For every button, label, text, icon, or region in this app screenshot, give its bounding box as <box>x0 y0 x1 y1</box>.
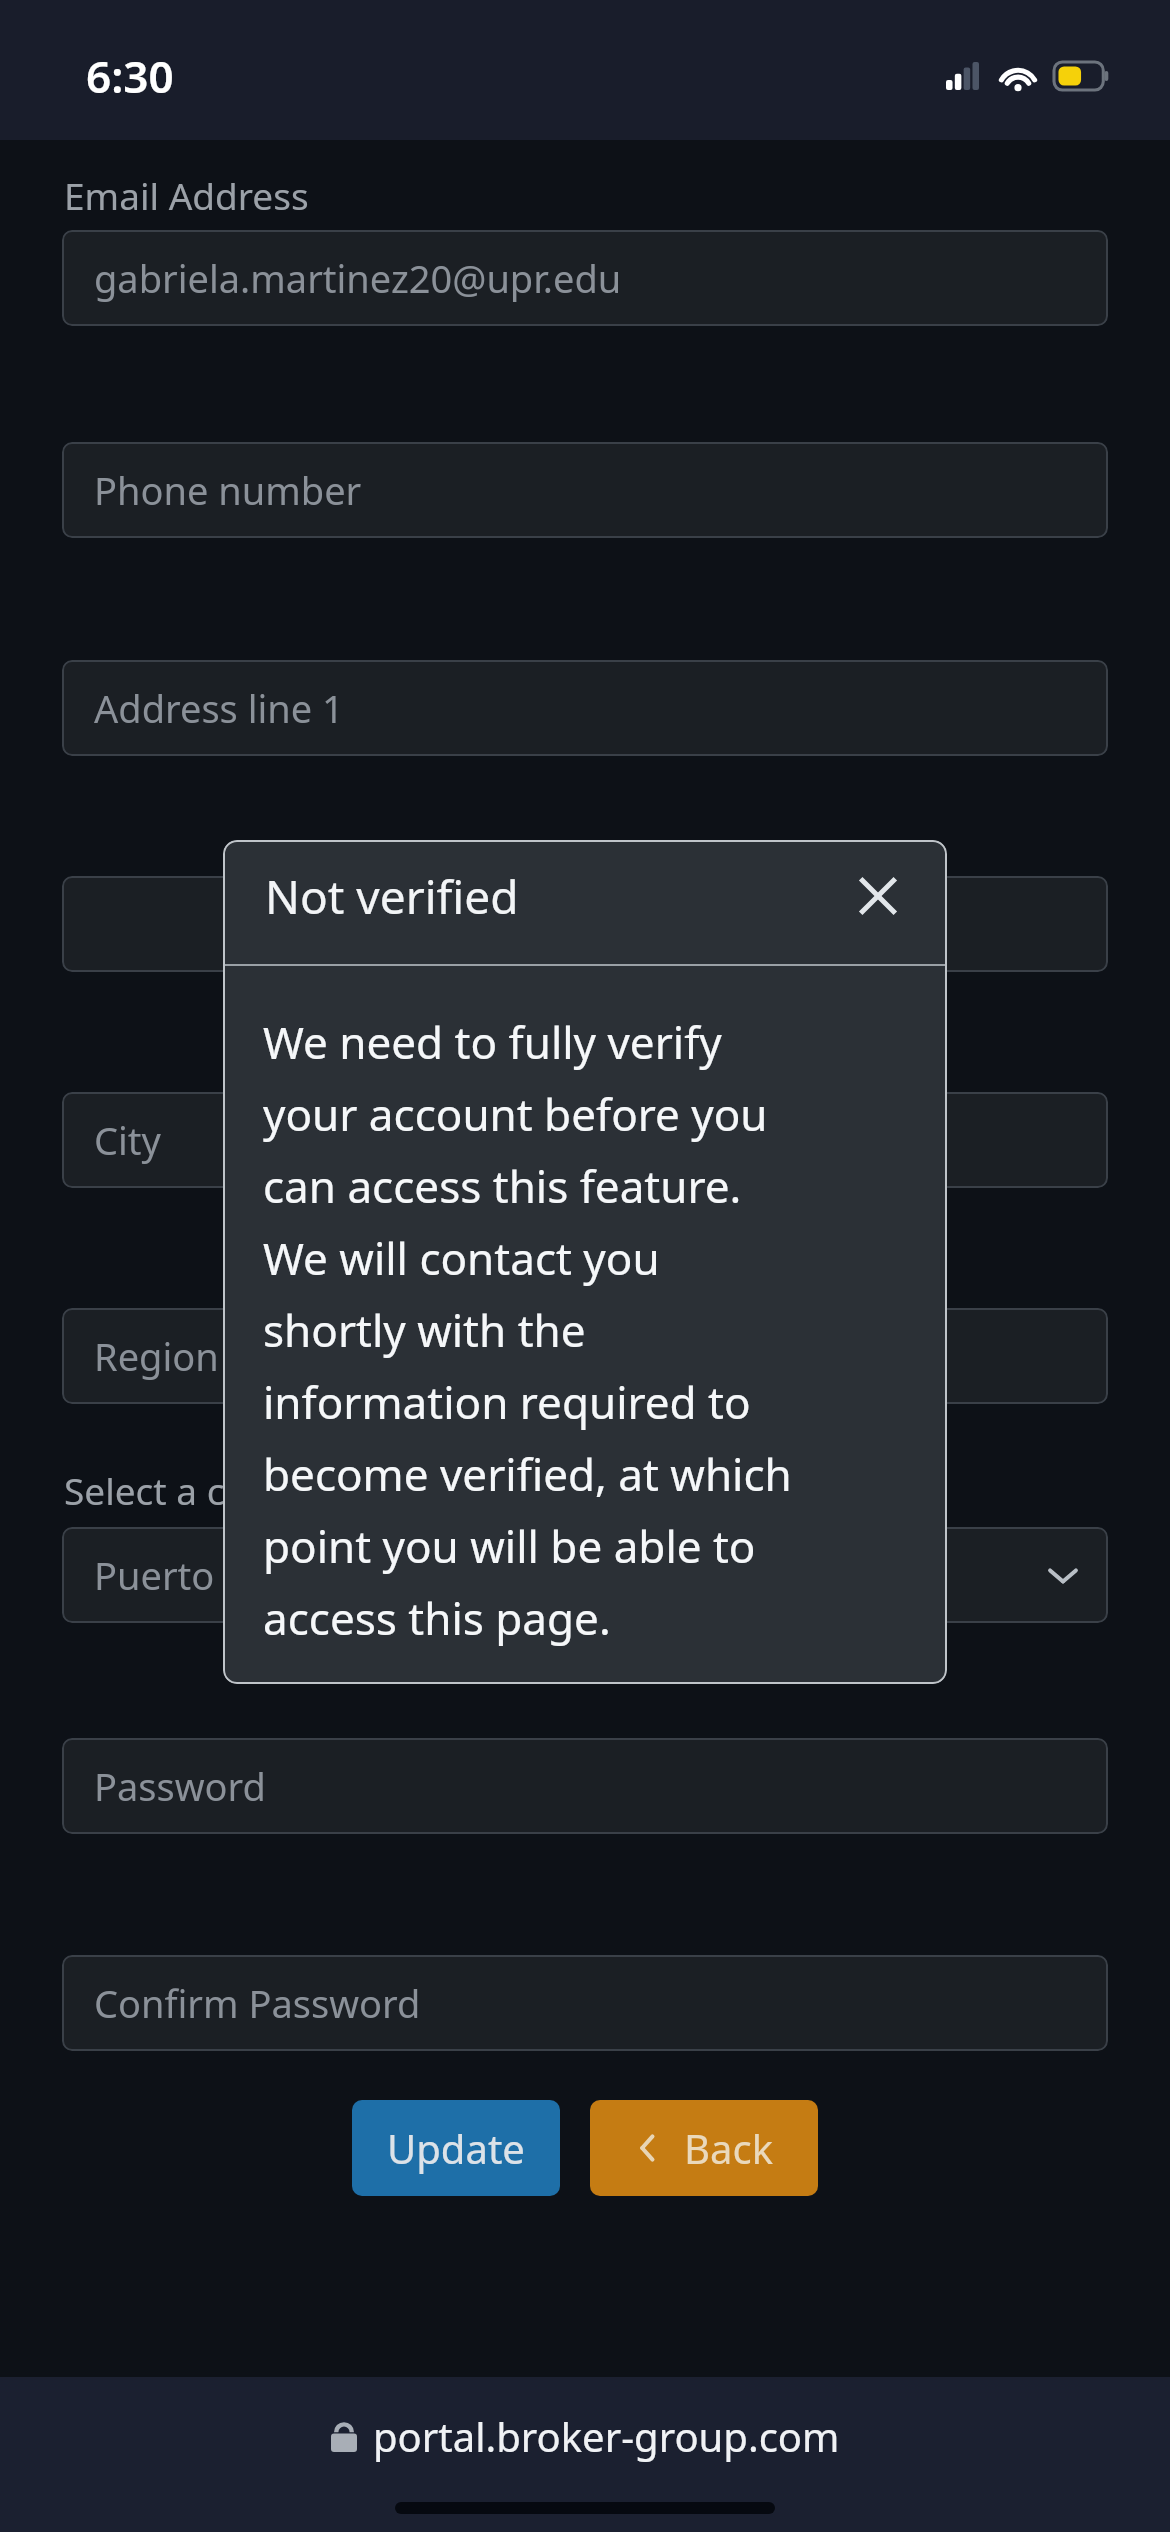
staticText: City <box>94 1114 161 1166</box>
staticText: can access this feature. <box>263 1156 742 1216</box>
staticText: Phone number <box>94 464 362 516</box>
staticText: your account before you <box>263 1084 768 1144</box>
staticText: We need to fully verify <box>263 1012 722 1072</box>
button[interactable]: Address line 1 <box>62 660 1108 756</box>
staticText: Confirm Password <box>94 1977 421 2029</box>
staticText: point you will be able to <box>263 1516 756 1576</box>
button[interactable]: Back <box>590 2100 818 2196</box>
button[interactable]: City <box>62 1092 1108 1188</box>
staticText: Puerto Rico <box>94 1549 299 1601</box>
staticText: gabriela.martinez20@upr.edu <box>94 252 622 304</box>
staticText: become verified, at which <box>263 1444 792 1504</box>
staticText: Select a country <box>64 1465 341 1515</box>
button[interactable]: Puerto Rico <box>62 1527 1108 1623</box>
staticText: Update <box>387 2121 525 2175</box>
button[interactable]: Confirm Password <box>62 1955 1108 2051</box>
button[interactable]: Password <box>62 1738 1108 1834</box>
staticText: Region <box>94 1330 219 1382</box>
staticText: Address line 1 <box>94 682 344 734</box>
button[interactable] <box>62 876 1108 972</box>
staticText: portal.broker-group.com <box>373 2409 840 2463</box>
button[interactable]: Close <box>847 865 909 927</box>
staticText: Not verified <box>265 865 519 928</box>
staticText: We will contact you <box>263 1228 660 1288</box>
button[interactable]: Update <box>352 2100 560 2196</box>
staticText: shortly with the <box>263 1300 586 1360</box>
staticText: Password <box>94 1760 266 1812</box>
staticText: access this page. <box>263 1588 611 1648</box>
staticText: Email Address <box>64 170 309 220</box>
staticText: 6:30 <box>86 46 174 106</box>
staticText: information required to <box>263 1372 751 1432</box>
button[interactable]: Phone number <box>62 442 1108 538</box>
staticText: Back <box>684 2121 773 2175</box>
button[interactable]: gabriela.martinez20@upr.edu <box>62 230 1108 326</box>
button[interactable]: portal.broker-group.com <box>331 2409 840 2463</box>
button[interactable]: Region <box>62 1308 1108 1404</box>
